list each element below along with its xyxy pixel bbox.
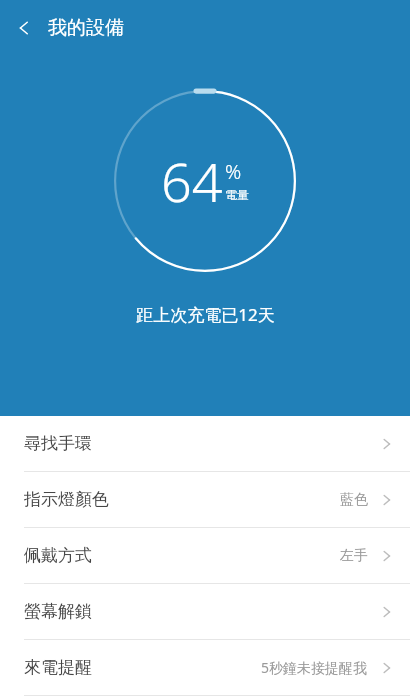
- staticText: 距上次充電已12天: [136, 303, 275, 326]
- staticText: 我的設備: [48, 16, 124, 40]
- staticText: 佩戴方式: [24, 545, 92, 566]
- staticText: 來電提醒: [24, 657, 92, 678]
- staticText: 5秒鐘未接提醒我: [261, 658, 368, 677]
- staticText: 左手: [340, 547, 368, 565]
- staticText: 螢幕解鎖: [24, 601, 92, 622]
- button[interactable]: 佩戴方式: [0, 528, 410, 583]
- staticText: %: [225, 158, 242, 185]
- button[interactable]: 來電提醒: [0, 640, 410, 695]
- button[interactable]: 螢幕解鎖: [0, 584, 410, 639]
- staticText: 電量: [225, 187, 249, 202]
- staticText: 尋找手環: [24, 433, 92, 454]
- staticText: 指示燈顏色: [24, 489, 109, 510]
- button[interactable]: 指示燈顏色: [0, 472, 410, 527]
- button[interactable]: 尋找手環: [0, 416, 410, 471]
- staticText: 藍色: [340, 491, 368, 509]
- button[interactable]: Back: [0, 4, 48, 52]
- staticText: 64: [161, 144, 223, 218]
